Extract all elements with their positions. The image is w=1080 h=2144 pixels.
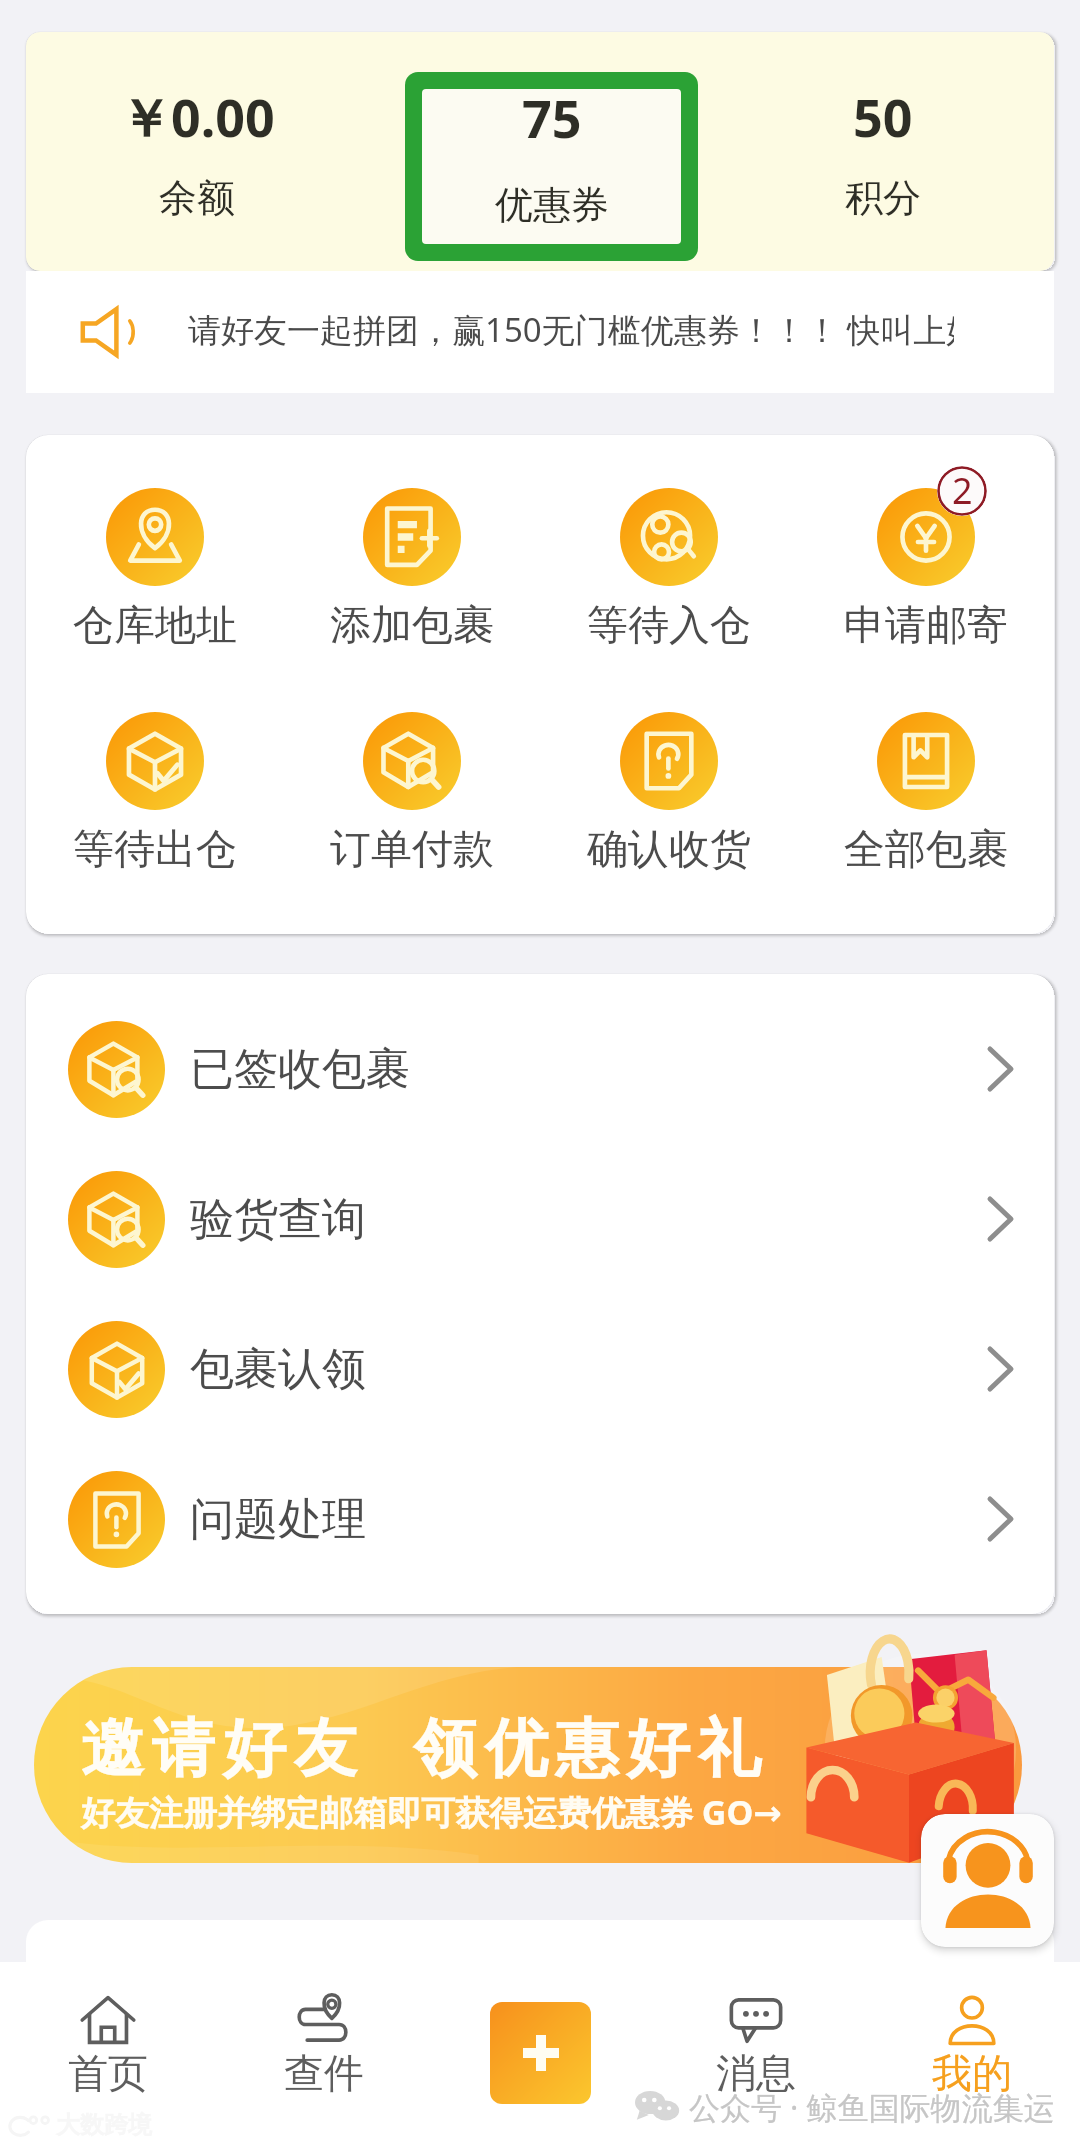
button[interactable]: 75 (422, 89, 681, 244)
button[interactable]: 包裹认领 (26, 1294, 1054, 1444)
staticText: 首页 (68, 2048, 148, 2098)
staticText: 我的 (932, 2048, 1012, 2098)
button[interactable]: 等待出仓 (26, 712, 283, 876)
button[interactable]: 50 (711, 32, 1054, 271)
staticText: 余额 (159, 174, 235, 222)
staticText: 邀请好友 领优惠好礼 (81, 1703, 769, 1789)
staticText: 添加包裹 (330, 600, 494, 652)
button[interactable]: 验货查询 (26, 1144, 1054, 1294)
button[interactable]: 请好友一起拼团，赢150无门槛优惠券！！！ 快叫上好友，一起来拿 (26, 271, 1054, 393)
staticText: 请好友一起拼团，赢150无门槛优惠券！！！ 快叫上好友，一起来拿 (188, 307, 954, 352)
staticText: 75 (522, 89, 582, 153)
button[interactable]: ￥0.00 (26, 32, 368, 271)
button[interactable]: 全部包裹 (797, 712, 1054, 876)
staticText: 优惠券 (495, 181, 609, 229)
staticText: 验货查询 (190, 1192, 366, 1247)
button[interactable]: 查件 (216, 1962, 432, 2144)
button[interactable]: 已签收包裹 (26, 994, 1054, 1144)
staticText: 积分 (845, 174, 921, 222)
button[interactable]: 我的 (864, 1962, 1080, 2144)
staticText: 全部包裹 (844, 824, 1008, 876)
button[interactable]: 等待入仓 (540, 488, 797, 652)
staticText: 等待入仓 (587, 600, 751, 652)
staticText: 仓库地址 (73, 600, 237, 652)
button[interactable]: Add package (490, 2002, 591, 2104)
button[interactable]: 确认收货 (540, 712, 797, 876)
button[interactable]: 订单付款 (283, 712, 540, 876)
button[interactable]: 首页 (0, 1962, 216, 2144)
staticText: 申请邮寄 (844, 600, 1008, 652)
button[interactable]: 邀请好友 领优惠好礼 (34, 1667, 1022, 1863)
staticText: 大数跨境 (56, 2110, 152, 2140)
staticText: 2 (952, 466, 973, 515)
staticText: ￥0.00 (119, 81, 275, 152)
staticText: 等待出仓 (73, 824, 237, 876)
staticText: 好友注册并绑定邮箱即可获得运费优惠券 GO→ (81, 1789, 782, 1835)
button[interactable]: 添加包裹 (283, 488, 540, 652)
staticText: 包裹认领 (190, 1342, 366, 1397)
staticText: 确认收货 (587, 824, 751, 876)
button[interactable]: 问题处理 (26, 1444, 1054, 1594)
button[interactable]: 2 (797, 488, 1054, 652)
button[interactable]: Customer service (921, 1814, 1054, 1947)
button[interactable]: 仓库地址 (26, 488, 283, 652)
staticText: 查件 (284, 2048, 364, 2098)
staticText: 订单付款 (330, 824, 494, 876)
staticText: 问题处理 (190, 1492, 366, 1547)
staticText: 已签收包裹 (190, 1042, 410, 1097)
staticText: 公众号 · 鲸鱼国际物流集运 (689, 2086, 1055, 2128)
staticText: 50 (853, 81, 913, 152)
staticText: 消息 (716, 2048, 796, 2098)
button[interactable]: 消息 (648, 1962, 864, 2144)
